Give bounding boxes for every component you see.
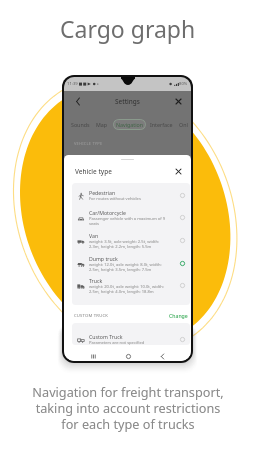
staticText: For routes without vehicles — [89, 196, 141, 202]
button[interactable]: Van — [72, 229, 190, 251]
staticText: Pedestrian — [89, 189, 116, 196]
staticText: 11:39 — [67, 81, 78, 87]
staticText: CUSTOM TRUCK — [74, 313, 109, 319]
staticText: 80% — [179, 81, 188, 87]
button[interactable]: Recent apps — [87, 350, 99, 361]
button[interactable]: Back — [156, 350, 168, 361]
button[interactable]: Car/Motorcycle — [72, 206, 190, 228]
button[interactable]: Home — [122, 350, 134, 361]
button[interactable]: Close — [172, 165, 184, 177]
staticText: Parameters are not specified — [89, 340, 145, 346]
staticText: Passenger vehicle with a maximum of 9 se… — [89, 216, 166, 226]
button[interactable]: Custom Truck — [72, 328, 190, 350]
staticText: Settings — [115, 97, 140, 106]
staticText: Navigation for freight transport, taking… — [32, 383, 224, 432]
staticText: Navigation — [116, 121, 144, 128]
button[interactable]: Back — [73, 96, 83, 106]
button[interactable]: Map — [96, 121, 108, 128]
button[interactable]: Truck — [72, 274, 190, 296]
button[interactable]: Onl — [179, 121, 188, 128]
staticText: Vehicle type — [75, 167, 112, 176]
staticText: Truck — [89, 277, 103, 284]
button[interactable]: Dump truck — [72, 252, 190, 274]
button[interactable]: Change — [167, 310, 190, 321]
staticText: weight: 20.0t, axle weight: 10.0t, width… — [89, 284, 164, 294]
staticText: Change — [169, 312, 188, 319]
staticText: Van — [89, 232, 99, 239]
button[interactable]: Close settings — [173, 96, 183, 106]
staticText: weight: 3.5t, axle weight: 2.5t, width: … — [89, 239, 160, 249]
staticText: weight: 12.0t, axle weight: 8.0t, width:… — [89, 262, 162, 272]
button[interactable]: Pedestrian — [72, 184, 190, 206]
staticText: Dump truck — [89, 255, 118, 262]
button[interactable]: Interface — [150, 121, 173, 128]
staticText: Car/Motorcycle — [89, 209, 127, 216]
staticText: Custom Truck — [89, 333, 123, 340]
button[interactable]: Navigation — [113, 119, 146, 130]
button[interactable]: Sounds — [71, 121, 90, 128]
staticText: Cargo graph — [60, 13, 196, 44]
staticText: VEHICLE TYPE — [74, 141, 103, 146]
